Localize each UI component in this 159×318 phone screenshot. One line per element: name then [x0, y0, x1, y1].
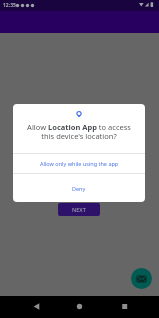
staticText: Deny [72, 185, 86, 192]
button[interactable]: NEXT [58, 203, 100, 216]
button[interactable] [131, 268, 152, 289]
staticText: Allow only while using the app [40, 160, 119, 167]
staticText: Allow Location App to access this device… [13, 122, 145, 141]
staticText: 12:35 [3, 2, 16, 9]
button[interactable]: Allow only while using the app [13, 154, 145, 173]
button[interactable]: Deny [13, 174, 145, 202]
staticText: NEXT [72, 206, 86, 213]
